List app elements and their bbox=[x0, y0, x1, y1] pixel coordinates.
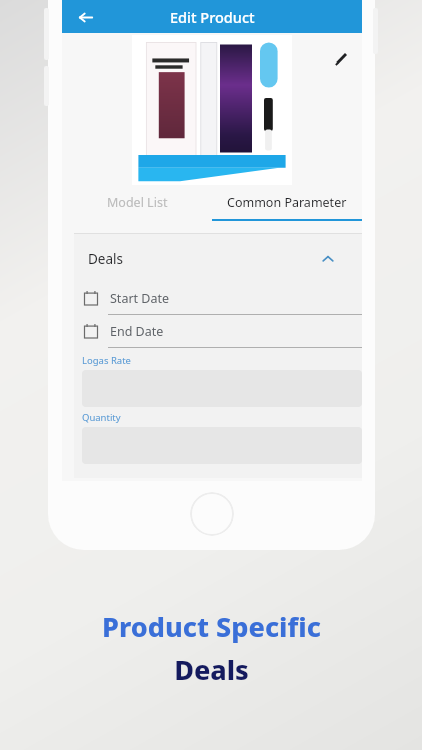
staticText: Start Date bbox=[110, 290, 170, 307]
staticText: Logas Rate bbox=[82, 354, 131, 367]
button[interactable]: Back bbox=[70, 2, 100, 32]
staticText: Quantity bbox=[82, 411, 121, 424]
button[interactable]: End Date bbox=[74, 315, 362, 348]
other: Home bbox=[190, 492, 234, 536]
staticText: Model List bbox=[107, 194, 168, 211]
button[interactable]: Deals bbox=[74, 244, 362, 274]
button[interactable]: Common Parameter bbox=[212, 185, 362, 219]
staticText: Product Specific bbox=[102, 608, 321, 645]
staticText: Deals bbox=[88, 250, 123, 268]
button[interactable]: Quantity bbox=[82, 407, 362, 464]
staticText: Common Parameter bbox=[227, 194, 347, 211]
staticText: Deals bbox=[174, 651, 249, 688]
staticText: End Date bbox=[110, 323, 164, 340]
button[interactable]: Logas Rate bbox=[82, 350, 362, 407]
button[interactable]: Start Date bbox=[74, 282, 362, 315]
button[interactable]: Edit bbox=[328, 45, 354, 71]
staticText: Edit Product bbox=[170, 7, 255, 27]
button[interactable]: Model List bbox=[62, 185, 212, 219]
